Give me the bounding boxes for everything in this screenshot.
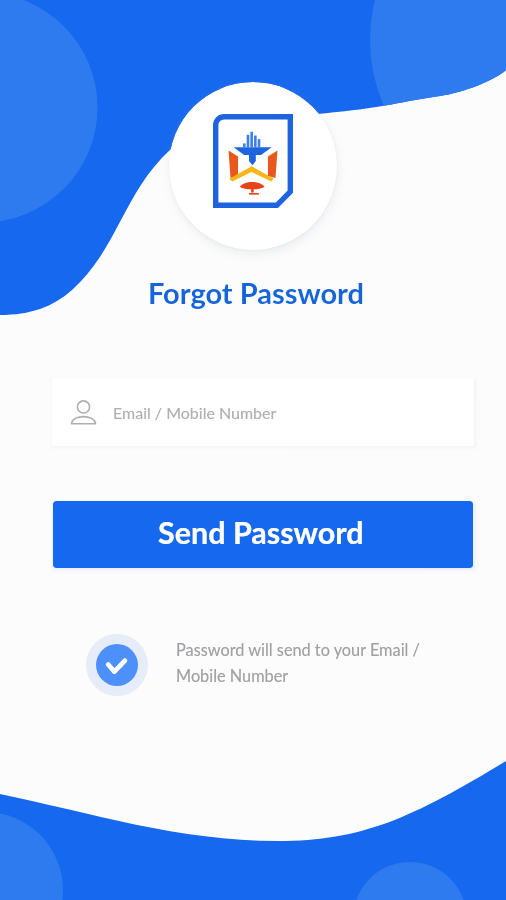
- button[interactable]: Email / Mobile Number: [52, 378, 474, 446]
- staticText: Forgot Password: [148, 275, 364, 310]
- button[interactable]: Send Password: [53, 501, 473, 568]
- staticText: Email / Mobile Number: [113, 403, 277, 422]
- staticText: Password will send to your Email / Mobil…: [176, 640, 420, 686]
- staticText: Send Password: [158, 514, 364, 551]
- other: Information: [86, 634, 148, 696]
